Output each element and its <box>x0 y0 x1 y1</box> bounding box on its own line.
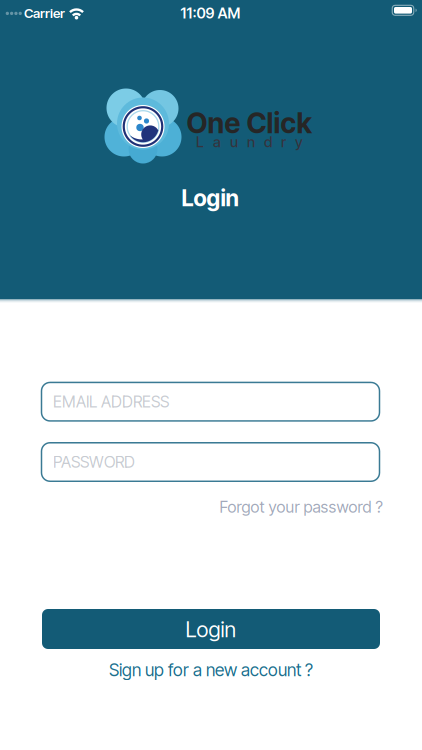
staticText: n <box>247 133 255 151</box>
textField[interactable]: EMAIL ADDRESS <box>41 382 379 421</box>
staticText: Login <box>185 617 236 642</box>
staticText: Forgot your password ? <box>219 498 382 516</box>
staticText: PASSWORD <box>53 453 135 471</box>
staticText: Sign up for a new account ? <box>109 660 313 680</box>
staticText: EMAIL ADDRESS <box>53 392 169 411</box>
button[interactable]: Forgot your password ? <box>219 498 382 516</box>
staticText: y <box>295 133 303 151</box>
staticText: r <box>281 133 286 151</box>
staticText: 11:09 AM <box>180 4 240 22</box>
staticText: One Click <box>186 106 311 139</box>
staticText: Login <box>181 185 238 211</box>
staticText: d <box>264 133 272 151</box>
staticText: Carrier <box>24 5 65 21</box>
staticText: a <box>213 133 221 151</box>
button[interactable]: Login <box>42 609 380 649</box>
button[interactable]: Sign up for a new account ? <box>109 660 313 680</box>
staticText: L <box>196 133 204 151</box>
secureTextField[interactable]: PASSWORD <box>41 443 379 481</box>
staticText: u <box>230 133 238 151</box>
